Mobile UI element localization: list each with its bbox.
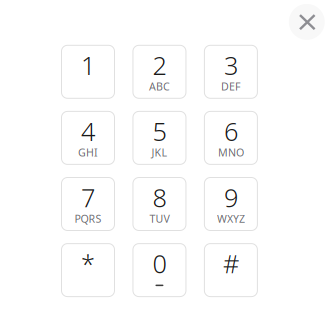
staticText: 1	[81, 48, 95, 82]
button[interactable]: 7	[61, 177, 114, 230]
staticText: JKL	[151, 145, 167, 160]
button[interactable]: 9	[204, 177, 257, 230]
staticText: 8	[152, 180, 166, 214]
button[interactable]: 5	[133, 111, 186, 164]
button[interactable]: 8	[133, 177, 186, 230]
button[interactable]: #	[204, 244, 257, 297]
button[interactable]: 0	[133, 244, 186, 297]
button[interactable]: 6	[204, 111, 257, 164]
staticText: 4	[81, 114, 95, 148]
staticText: 9	[224, 180, 238, 214]
button[interactable]: *	[61, 244, 114, 297]
button[interactable]: 3	[204, 45, 257, 98]
staticText: 7	[81, 180, 95, 214]
staticText: 0	[152, 247, 166, 280]
button[interactable]: 4	[61, 111, 114, 164]
staticText: 2	[152, 48, 166, 82]
staticText: WXYZ	[217, 211, 245, 226]
staticText: 5	[152, 114, 166, 148]
button[interactable]: Close	[289, 4, 325, 40]
staticText: 6	[224, 114, 238, 148]
staticText: MNO	[218, 145, 244, 160]
staticText: #	[223, 247, 239, 280]
staticText: GHI	[78, 145, 98, 160]
button[interactable]: 1	[61, 45, 114, 98]
staticText: 3	[224, 48, 238, 82]
staticText: *	[81, 247, 95, 280]
staticText: ABC	[149, 79, 170, 93]
staticText: TUV	[149, 211, 169, 226]
staticText: DEF	[221, 79, 241, 93]
button[interactable]: 2	[133, 45, 186, 98]
staticText: PQRS	[74, 211, 101, 226]
